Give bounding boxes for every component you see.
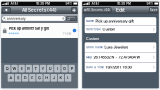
button[interactable]: Back bbox=[2, 7, 11, 13]
staticText: Edit bbox=[116, 7, 125, 13]
button[interactable]: Pick up anniversary gift bbox=[0, 23, 78, 38]
staticText: 10/7/2011 16:30 bbox=[105, 65, 131, 69]
button[interactable]: Y bbox=[40, 65, 46, 72]
staticText: 94% bbox=[65, 2, 73, 5]
staticText: Map bbox=[86, 56, 92, 59]
staticText: AT&T bbox=[90, 2, 101, 5]
staticText: Save bbox=[150, 8, 158, 12]
staticText: T bbox=[34, 66, 37, 71]
staticText: Today bbox=[63, 32, 71, 35]
staticText: Custom bbox=[102, 27, 115, 31]
button[interactable]: K bbox=[58, 74, 64, 82]
staticText: Custom bbox=[86, 36, 99, 41]
staticText: J bbox=[53, 75, 55, 80]
button[interactable]: A bbox=[8, 74, 14, 82]
button[interactable]: Add bbox=[71, 7, 77, 13]
button[interactable]: Q bbox=[4, 65, 10, 72]
staticText: Pick up anniversary gift bbox=[95, 19, 133, 23]
staticText: S bbox=[17, 75, 19, 80]
staticText: All Secrets (44) bbox=[22, 7, 57, 13]
button[interactable]: R bbox=[26, 65, 32, 72]
button[interactable]: Name bbox=[85, 17, 156, 25]
staticText: Pick up anniversary gift bbox=[9, 26, 49, 31]
staticText: Item Type bbox=[86, 28, 101, 31]
button[interactable]: Item Type bbox=[85, 25, 156, 33]
button[interactable]: I bbox=[54, 65, 61, 72]
staticText: Cancel bbox=[67, 15, 76, 22]
button[interactable]: S bbox=[15, 74, 21, 82]
button[interactable]: W bbox=[11, 65, 18, 72]
button[interactable]: U bbox=[47, 65, 53, 72]
staticText: AT&T bbox=[9, 2, 20, 5]
staticText: K bbox=[59, 75, 62, 80]
staticText: All Secrets (44) bbox=[86, 8, 110, 12]
staticText: A bbox=[9, 75, 12, 80]
button[interactable]: All Secrets (44) bbox=[83, 7, 111, 13]
staticText: P bbox=[71, 66, 73, 71]
staticText: I bbox=[57, 66, 58, 71]
staticText: Name bbox=[86, 19, 94, 23]
staticText: 10:38 PM bbox=[117, 2, 131, 5]
staticText: R bbox=[27, 66, 30, 71]
staticText: 26.145532 N - 72.473434 W bbox=[93, 55, 140, 59]
staticText: Luxe Jewelers bbox=[104, 45, 128, 49]
button[interactable]: E bbox=[18, 65, 25, 72]
button[interactable]: G bbox=[36, 74, 43, 82]
button[interactable]: Save bbox=[149, 7, 158, 13]
staticText: anniversary bbox=[7, 16, 26, 21]
staticText: F bbox=[31, 75, 33, 80]
button[interactable]: Cancel bbox=[66, 16, 77, 21]
staticText: W bbox=[12, 66, 16, 71]
staticText: Store name bbox=[86, 45, 103, 49]
button[interactable]: F bbox=[29, 74, 36, 82]
staticText: E bbox=[21, 66, 23, 71]
staticText: H bbox=[45, 75, 48, 80]
staticText: O bbox=[63, 66, 66, 71]
staticText: Y bbox=[42, 66, 45, 71]
staticText: G bbox=[38, 75, 41, 80]
button[interactable]: D bbox=[22, 74, 28, 82]
staticText: U bbox=[49, 66, 52, 71]
button[interactable]: Store name bbox=[85, 42, 156, 52]
button[interactable]: J bbox=[51, 74, 57, 82]
staticText: 10:38 PM bbox=[36, 2, 50, 5]
staticText: Q bbox=[6, 66, 9, 71]
button[interactable]: O bbox=[61, 65, 68, 72]
button[interactable]: Date & Time bbox=[85, 62, 156, 72]
button[interactable]: H bbox=[43, 74, 50, 82]
staticText: Date & Time bbox=[86, 66, 104, 69]
staticText: 94% bbox=[146, 2, 154, 5]
button[interactable]: P bbox=[68, 65, 75, 72]
staticText: L bbox=[67, 75, 69, 80]
button[interactable]: L bbox=[65, 74, 71, 82]
button[interactable]: Map bbox=[85, 52, 156, 62]
button[interactable]: T bbox=[33, 65, 39, 72]
staticText: D bbox=[24, 75, 27, 80]
